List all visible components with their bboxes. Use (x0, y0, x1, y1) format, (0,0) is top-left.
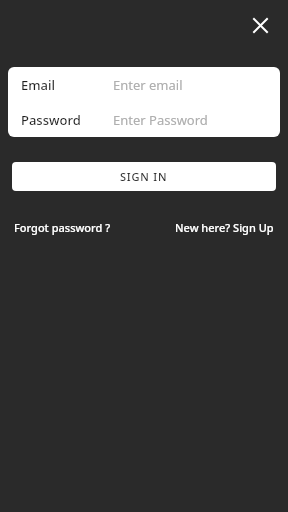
staticText: Password (21, 111, 81, 129)
button[interactable]: Password (8, 102, 280, 137)
button[interactable]: Forgot password ? (14, 220, 111, 235)
staticText: SIGN IN (120, 169, 168, 184)
button[interactable]: SIGN IN (12, 162, 276, 191)
button[interactable] (247, 12, 274, 39)
staticText: Enter Password (113, 111, 208, 129)
button[interactable]: New here? Sign Up (175, 220, 274, 235)
button[interactable]: Email (8, 67, 280, 102)
staticText: Enter email (113, 76, 183, 94)
staticText: Email (21, 76, 56, 94)
staticText: New here? Sign Up (175, 220, 274, 235)
staticText: Forgot password ? (14, 220, 111, 235)
